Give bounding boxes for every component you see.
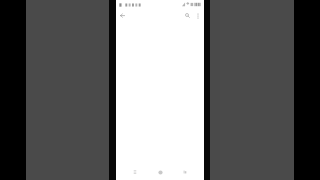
button[interactable]: More options <box>193 11 202 20</box>
button[interactable]: Home <box>154 166 166 178</box>
button[interactable]: Search <box>183 11 192 20</box>
button[interactable]: Back <box>118 11 127 20</box>
button[interactable]: Back <box>179 166 191 178</box>
button[interactable]: Recents <box>129 166 141 178</box>
